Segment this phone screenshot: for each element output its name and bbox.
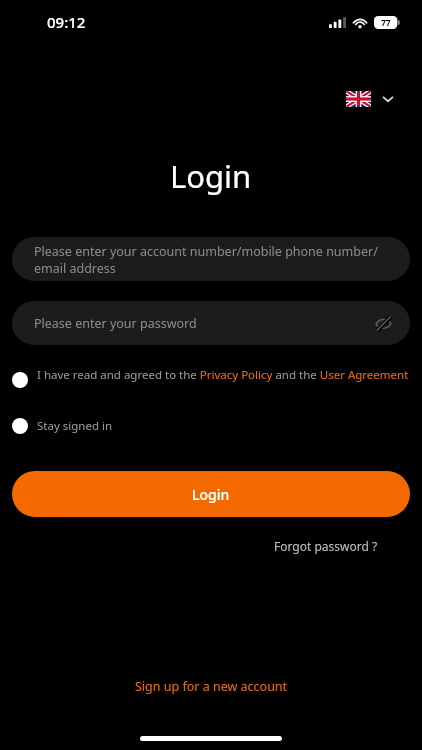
staticText: Please enter your password — [34, 315, 197, 332]
staticText: Stay signed in — [37, 418, 113, 434]
staticText: Login — [170, 155, 252, 197]
staticText: 09:12 — [47, 12, 86, 32]
button[interactable]: Forgot password ? — [262, 534, 390, 558]
staticText: Login — [192, 485, 230, 504]
button[interactable]: Please enter your account number/mobile … — [12, 237, 410, 281]
staticText: Forgot password ? — [274, 538, 378, 554]
button[interactable]: I have read and agreed to the Privacy Po… — [12, 367, 410, 395]
button[interactable]: Show password — [368, 308, 398, 338]
button[interactable]: Please enter your password — [12, 301, 410, 345]
button[interactable]: Stay signed in — [12, 415, 113, 437]
staticText: Sign up for a new account — [135, 678, 288, 695]
button[interactable]: Sign up for a new account — [121, 673, 302, 700]
staticText: I have read and agreed to the Privacy Po… — [37, 367, 409, 383]
button[interactable]: Select language — [340, 86, 401, 112]
staticText: Please enter your account number/mobile … — [34, 243, 392, 276]
staticText: 77 — [381, 17, 391, 29]
button[interactable]: Login — [12, 471, 410, 517]
